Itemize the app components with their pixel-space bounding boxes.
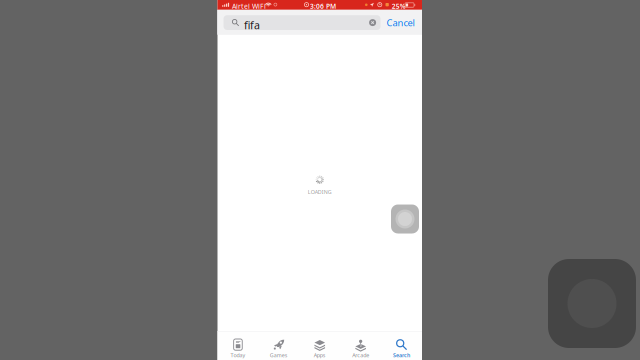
staticText: Apps (314, 352, 326, 359)
staticText: 3:06 PM (310, 2, 336, 11)
button[interactable]: Search (381, 331, 422, 360)
staticText: fifa (244, 18, 260, 32)
button[interactable]: Arcade (340, 331, 381, 360)
button[interactable]: AssistiveTouch (391, 204, 419, 233)
staticText: Arcade (352, 352, 369, 359)
staticText: LOADING (308, 188, 332, 196)
button[interactable]: Apps (299, 331, 340, 360)
staticText: Cancel (386, 16, 414, 29)
staticText: Airtel WiFi (232, 2, 266, 11)
staticText: Today (230, 352, 245, 359)
button[interactable]: Today (217, 331, 258, 360)
staticText: Games (270, 352, 288, 359)
button[interactable]: Cancel (383, 15, 417, 30)
staticText: 25% (392, 2, 406, 11)
staticText: Search (393, 352, 410, 359)
button[interactable]: fifa (223, 15, 380, 30)
button[interactable]: Games (258, 331, 299, 360)
